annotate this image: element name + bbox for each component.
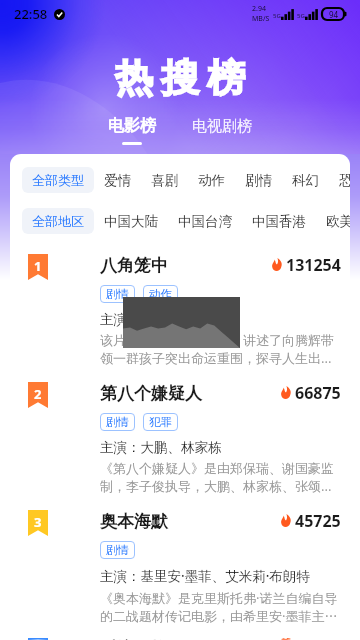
button[interactable]: 爱情 — [94, 167, 141, 193]
staticText: 喜剧 — [151, 172, 178, 189]
button[interactable]: 电影榜 — [100, 116, 164, 145]
staticText: 45725 — [295, 510, 341, 532]
button[interactable]: 中国香港 — [242, 208, 316, 234]
staticText: 5G — [297, 12, 305, 20]
staticText: 剧情 — [106, 415, 129, 429]
staticText: 第八个嫌疑人 — [100, 383, 202, 404]
button[interactable]: 中国大陆 — [94, 208, 168, 234]
staticText: 66875 — [295, 382, 341, 404]
staticText: MB/S — [252, 14, 270, 24]
staticText: 全部地区 — [32, 213, 84, 229]
staticText: 剧情 — [245, 172, 272, 189]
button[interactable]: 全部地区 — [22, 208, 94, 234]
staticText: 2.94 — [252, 4, 266, 14]
staticText: 《第八个嫌疑人》是由郑保瑞、谢国豪监制，李子俊执导，大鹏、林家栋、张颂... — [100, 460, 341, 495]
staticText: 主演：基里安·墨菲、艾米莉·布朗特 — [100, 567, 310, 585]
staticText: 剧情 — [106, 287, 129, 301]
staticText: 中国台湾 — [178, 213, 232, 230]
staticText: 奥本海默 — [100, 511, 168, 532]
staticText: 3 — [34, 513, 42, 531]
staticText: 欧美 — [326, 213, 350, 230]
staticText: 2 — [34, 385, 42, 403]
staticText: 中国大陆 — [104, 213, 158, 230]
staticText: 电影榜 — [108, 116, 156, 136]
staticText: 22:58 — [14, 5, 48, 23]
button[interactable]: 4 — [10, 638, 350, 640]
button[interactable]: 恐 — [329, 167, 350, 193]
button[interactable]: 电视剧榜 — [184, 116, 260, 137]
staticText: 电视剧榜 — [192, 117, 252, 136]
button[interactable]: 全部类型 — [22, 167, 94, 193]
staticText: 94 — [329, 9, 339, 20]
staticText: 热搜榜 — [111, 54, 249, 102]
staticText: 全部类型 — [32, 172, 84, 188]
button[interactable]: 科幻 — [282, 167, 329, 193]
staticText: 八角笼中 — [100, 255, 168, 276]
staticText: 犯罪 — [149, 415, 172, 429]
staticText: 恐 — [339, 172, 350, 189]
staticText: 剧情 — [106, 543, 129, 557]
staticText: 爱情 — [104, 172, 131, 189]
button[interactable]: 动作 — [188, 167, 235, 193]
button[interactable]: 欧美 — [316, 208, 350, 234]
staticText: 中国香港 — [252, 213, 306, 230]
staticText: 动作 — [198, 172, 225, 189]
staticText: 《奥本海默》是克里斯托弗·诺兰自编自导的二战题材传记电影，由希里安·墨菲主演..… — [100, 589, 341, 625]
staticText: 1 — [34, 257, 42, 275]
button[interactable]: 喜剧 — [141, 167, 188, 193]
staticText: 科幻 — [292, 172, 319, 189]
button[interactable]: 剧情 — [235, 167, 282, 193]
staticText: 该片根据真实事件改编，讲述了向腾辉带领一群孩子突出命运重围，探寻人生出... — [100, 332, 341, 367]
staticText: 动作 — [149, 287, 172, 301]
button[interactable]: 1 — [10, 254, 350, 382]
button[interactable]: 中国台湾 — [168, 208, 242, 234]
staticText: 131254 — [286, 254, 341, 276]
staticText: 主演：大鹏、林家栋 — [100, 439, 222, 456]
button[interactable]: 2 — [10, 382, 350, 510]
staticText: 主演：王宝强、陈永胜 — [100, 311, 235, 328]
staticText: 5G — [273, 12, 281, 20]
staticText: 孤注一掷 — [100, 638, 168, 640]
button[interactable]: 3 — [10, 510, 350, 638]
